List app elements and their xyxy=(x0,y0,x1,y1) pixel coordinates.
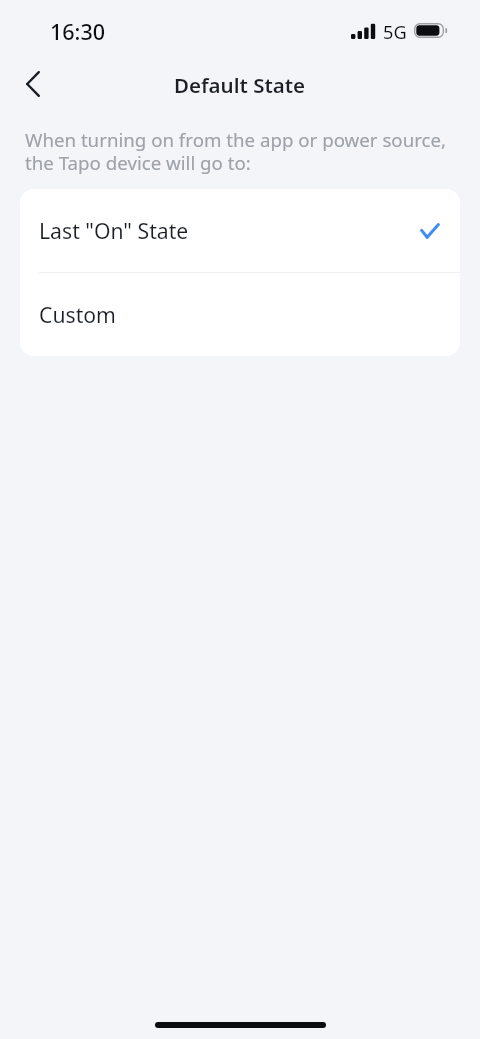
staticText: Default State xyxy=(174,71,306,99)
button[interactable]: Last "On" State xyxy=(20,189,460,272)
staticText: Custom xyxy=(39,300,116,329)
staticText: 5G xyxy=(383,20,407,45)
staticText: Last "On" State xyxy=(39,216,189,245)
button[interactable]: Back xyxy=(11,62,55,106)
staticText: When turning on from the app or power so… xyxy=(25,127,447,176)
button[interactable]: Custom xyxy=(20,273,460,356)
staticText: 16:30 xyxy=(50,17,106,46)
